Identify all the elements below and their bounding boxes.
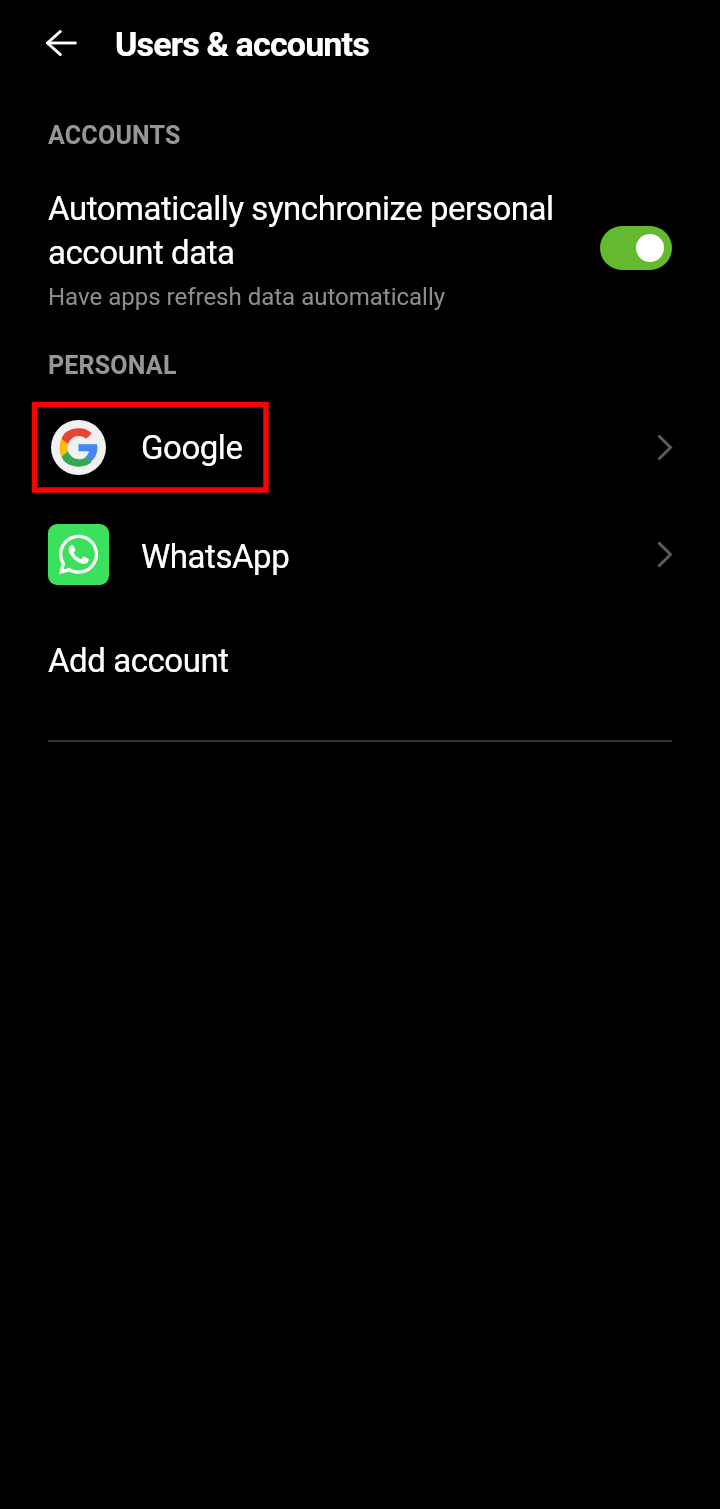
staticText: Users & accounts <box>115 24 369 64</box>
staticText: Google <box>141 428 243 467</box>
staticText: Add account <box>48 641 229 680</box>
staticText: Have apps refresh data automatically <box>48 283 446 311</box>
staticText: WhatsApp <box>141 537 290 576</box>
button[interactable]: Google <box>0 393 720 501</box>
staticText: Automatically synchronize personal accou… <box>48 189 578 272</box>
button[interactable]: Add account <box>0 610 720 710</box>
other: Open WhatsApp <box>657 541 672 568</box>
staticText: ACCOUNTS <box>48 121 181 150</box>
button[interactable]: Automatically synchronize personal accou… <box>0 172 720 327</box>
button[interactable]: Toggle automatic sync <box>600 226 672 270</box>
button[interactable]: WhatsApp <box>0 500 720 609</box>
staticText: PERSONAL <box>48 351 177 380</box>
other: Open Google <box>657 434 672 461</box>
button[interactable]: Navigate up <box>34 15 90 71</box>
